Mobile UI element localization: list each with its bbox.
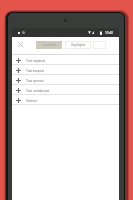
button[interactable]: Эпилог (12, 95, 119, 104)
staticText: Том четвёртый (26, 89, 50, 93)
staticText: Highlights (71, 43, 86, 47)
staticText: Том первый (26, 59, 45, 63)
staticText: 10:40 (105, 31, 114, 35)
staticText: Эпилог (26, 99, 38, 103)
button[interactable]: Highlights (65, 41, 91, 49)
button[interactable]: Contents (36, 41, 62, 49)
staticText: Том третий (26, 79, 44, 83)
button[interactable]: Close (14, 38, 26, 50)
staticText: Том второй (26, 69, 44, 73)
button[interactable]: Том первый (12, 55, 119, 64)
button[interactable]: Том второй (12, 65, 119, 74)
button[interactable]: Том третий (12, 75, 119, 84)
staticText: Contents (43, 43, 56, 47)
button[interactable]: Том четвёртый (12, 85, 119, 94)
button[interactable]: More options (93, 41, 106, 49)
